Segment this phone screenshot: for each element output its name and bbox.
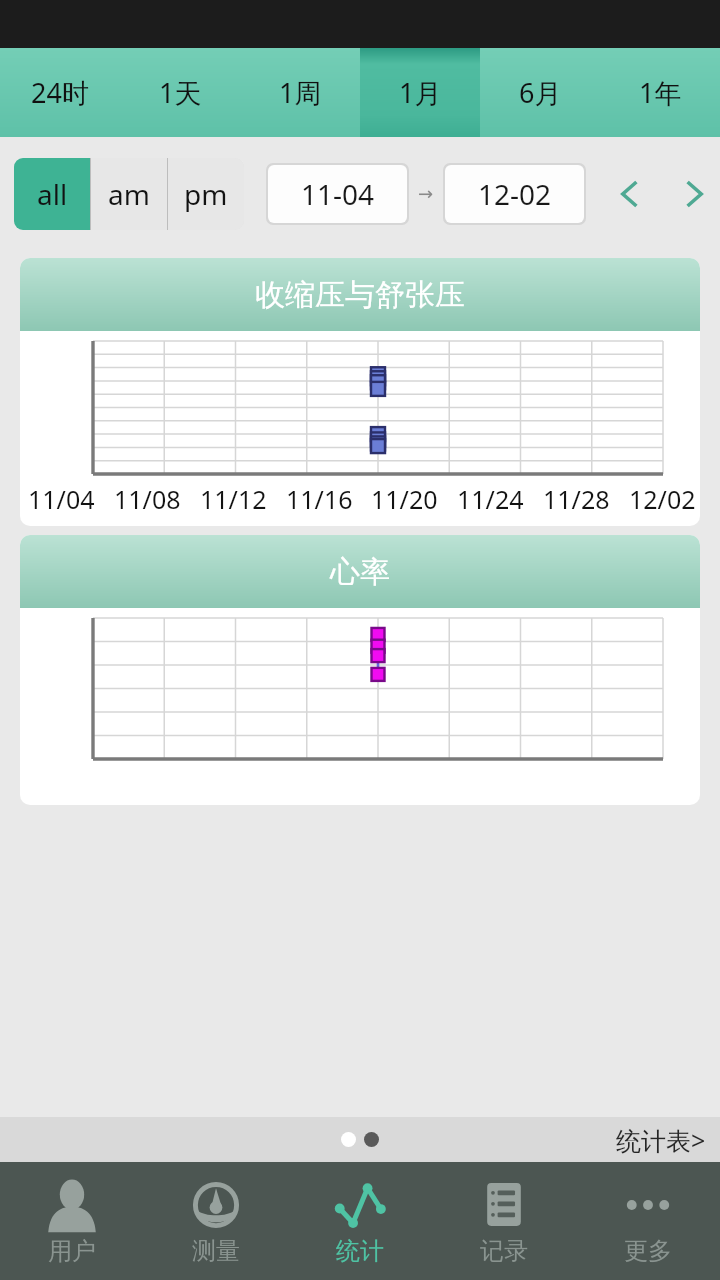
button[interactable]: 1月 (360, 48, 480, 137)
staticText: 11/28 (543, 482, 610, 516)
staticText: 心率 (330, 553, 390, 591)
button[interactable]: Next range (668, 168, 720, 220)
staticText: 6月 (519, 74, 562, 111)
staticText: 11/24 (457, 482, 524, 516)
button[interactable]: 11-04 (268, 165, 407, 223)
staticText: 11/20 (371, 482, 438, 516)
staticText: all (37, 175, 68, 213)
button[interactable]: 统计表> (616, 1123, 706, 1157)
button[interactable]: 测量 (144, 1162, 288, 1280)
staticText: 用户 (48, 1236, 96, 1266)
staticText: 测量 (192, 1236, 240, 1266)
button[interactable]: 更多 (576, 1162, 720, 1280)
staticText: 统计表> (616, 1123, 706, 1157)
button[interactable]: 用户 (0, 1162, 144, 1280)
button[interactable]: 1天 (120, 48, 240, 137)
button[interactable]: 1周 (240, 48, 360, 137)
staticText: 1天 (159, 74, 202, 111)
staticText: 11/16 (286, 482, 353, 516)
staticText: 12-02 (478, 175, 552, 213)
staticText: → (418, 183, 434, 204)
button[interactable]: 心率 (20, 535, 700, 805)
button[interactable]: 1年 (600, 48, 720, 137)
button[interactable]: am (91, 158, 167, 230)
staticText: 24时 (31, 74, 89, 111)
staticText: 收缩压与舒张压 (255, 276, 465, 314)
button[interactable]: 统计 (288, 1162, 432, 1280)
staticText: 1周 (279, 74, 322, 111)
staticText: 1年 (639, 74, 682, 111)
button[interactable]: pm (168, 158, 244, 230)
staticText: pm (184, 175, 228, 213)
staticText: 12/02 (629, 482, 696, 516)
staticText: 11/04 (28, 482, 95, 516)
staticText: 记录 (480, 1236, 528, 1266)
button[interactable]: 6月 (480, 48, 600, 137)
staticText: am (108, 175, 150, 213)
staticText: 11/08 (114, 482, 181, 516)
staticText: 统计 (336, 1236, 384, 1266)
button[interactable]: all (14, 158, 90, 230)
staticText: 1月 (399, 74, 442, 111)
button[interactable]: 收缩压与舒张压 (20, 258, 700, 526)
button[interactable]: 12-02 (445, 165, 584, 223)
button[interactable]: 24时 (0, 48, 120, 137)
button[interactable]: Previous range (604, 168, 656, 220)
button[interactable]: 记录 (432, 1162, 576, 1280)
staticText: 更多 (624, 1236, 672, 1266)
staticText: 11/12 (200, 482, 267, 516)
staticText: 11-04 (301, 175, 375, 213)
